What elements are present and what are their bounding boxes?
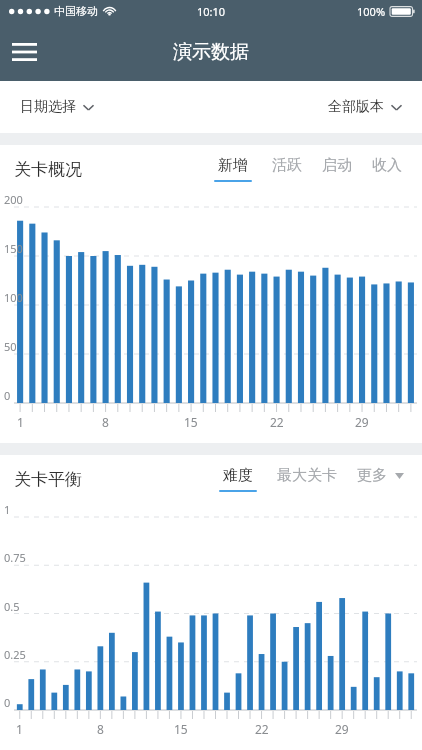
staticText: 8 — [102, 414, 109, 430]
staticText: 29 — [335, 721, 349, 737]
button[interactable]: 难度 — [217, 466, 259, 492]
staticText: 中国移动 — [54, 4, 98, 18]
staticText: 50 — [4, 339, 17, 354]
staticText: 更多 — [357, 466, 387, 485]
staticText: 1 — [17, 414, 24, 430]
staticText: 200 — [4, 192, 23, 207]
staticText: 8 — [97, 721, 104, 737]
button[interactable]: 全部版本 — [324, 94, 406, 120]
staticText: 日期选择 — [20, 98, 76, 116]
staticText: 0.25 — [4, 647, 26, 662]
staticText: 0.75 — [4, 550, 26, 565]
staticText: 活跃 — [272, 156, 302, 175]
staticText: 全部版本 — [328, 98, 384, 116]
button[interactable]: 日期选择 — [16, 94, 98, 120]
staticText: 22 — [255, 721, 269, 737]
staticText: 最大关卡 — [277, 466, 337, 485]
staticText: 0.5 — [4, 599, 20, 614]
staticText: 100% — [357, 4, 386, 19]
staticText: 演示数据 — [173, 40, 249, 64]
staticText: 15 — [184, 414, 198, 430]
staticText: 100 — [4, 290, 23, 305]
staticText: 收入 — [372, 156, 402, 175]
staticText: 150 — [4, 241, 23, 256]
button[interactable]: 收入 — [370, 156, 404, 182]
button[interactable]: Menu — [2, 30, 46, 74]
staticText: 0 — [4, 695, 11, 710]
button[interactable]: 活跃 — [270, 156, 304, 182]
staticText: 1 — [4, 502, 11, 517]
button[interactable]: 更多 — [355, 466, 389, 492]
button[interactable]: 启动 — [320, 156, 354, 182]
button[interactable]: 新增 — [212, 156, 254, 182]
staticText: 15 — [174, 721, 188, 737]
staticText: 启动 — [322, 156, 352, 175]
staticText: 22 — [270, 414, 284, 430]
staticText: 10:10 — [197, 4, 226, 19]
button[interactable]: 最大关卡 — [275, 466, 339, 492]
staticText: 关卡平衡 — [14, 469, 82, 490]
staticText: 新增 — [218, 156, 248, 175]
staticText: 29 — [355, 414, 369, 430]
staticText: 0 — [4, 388, 11, 403]
staticText: 难度 — [223, 466, 253, 485]
staticText: 1 — [16, 721, 23, 737]
staticText: 关卡概况 — [14, 159, 82, 180]
